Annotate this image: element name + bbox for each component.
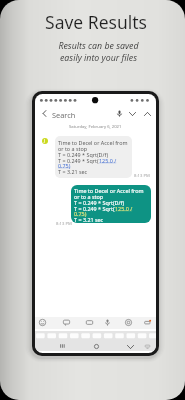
button[interactable]: Home [90,340,102,352]
staticText: T = 0.249 * Sqrt( [74,205,115,212]
staticText: 125.0 / [115,205,133,212]
staticText: Time to Decel or Accel from [58,139,128,146]
button[interactable]: Tool 5 [123,317,134,328]
button[interactable]: Tool 2 [61,317,72,328]
staticText: Save Results [45,10,147,34]
staticText: 125.0 / [99,157,117,164]
staticText: Search [52,110,76,120]
button[interactable]: Time to Decel or Accel from [55,136,132,178]
staticText: T = 0.249 * Sqrt(D/f) [58,151,109,158]
button[interactable]: Tool 4 [102,317,113,328]
button[interactable]: Back [124,340,137,353]
staticText: 0.75) [58,162,71,169]
button[interactable]: Hide keyboard [142,341,153,352]
button[interactable]: Next result [126,107,139,120]
button[interactable]: Previous result [141,107,154,120]
staticText: 0.75) [74,210,87,217]
button[interactable]: Tool 3 [84,317,95,328]
button[interactable]: Voice search [113,107,126,120]
staticText: 8:13 PM [56,221,72,227]
staticText: Results can be saved easily into your fi… [58,40,139,64]
staticText: T = 0.249 * Sqrt(D/f) [74,199,125,206]
button[interactable]: Tool 1 [37,317,48,328]
staticText: Saturday, February 6, 2021 [69,124,122,130]
staticText: or to a stop [58,145,88,152]
button[interactable]: Tool 6 [142,317,153,328]
button[interactable]: Time to Decel or Accel from [71,185,151,223]
button[interactable]: Back [38,107,51,120]
staticText: T = 3.21 sec [74,216,104,223]
staticText: or to a stop [74,193,104,200]
staticText: Time to Decel or Accel from [74,187,144,194]
staticText: T = 3.21 sec [58,168,88,175]
staticText: J [44,138,46,144]
staticText: T = 0.249 * Sqrt( [58,157,99,164]
staticText: 8:13 PM [134,173,150,179]
button[interactable]: Recents [56,340,68,352]
